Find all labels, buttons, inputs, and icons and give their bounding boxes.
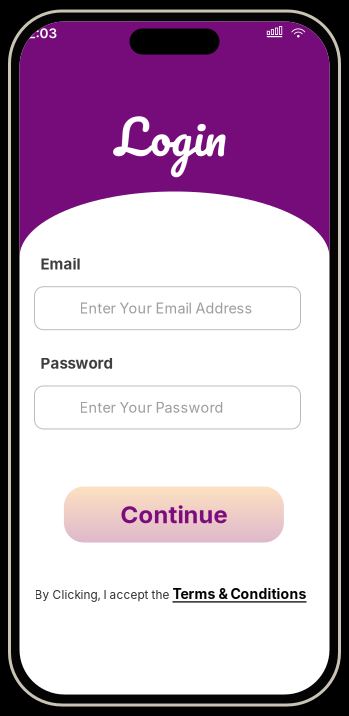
staticText: Terms & Conditions [172,585,306,602]
staticText: Continue [120,500,227,529]
staticText: Email [40,255,80,273]
staticText: Login [115,95,227,177]
staticText: By Clicking, I accept the [34,588,172,602]
button[interactable]: Password field [34,386,300,429]
button[interactable]: Continue [64,486,284,542]
button[interactable]: Terms & Conditions [172,585,306,602]
button[interactable]: Email address field [34,287,300,330]
staticText: Enter Your Password [79,399,223,416]
staticText: Enter Your Email Address [79,299,252,317]
staticText: Password [40,354,112,372]
staticText: 12:03 [21,25,57,41]
